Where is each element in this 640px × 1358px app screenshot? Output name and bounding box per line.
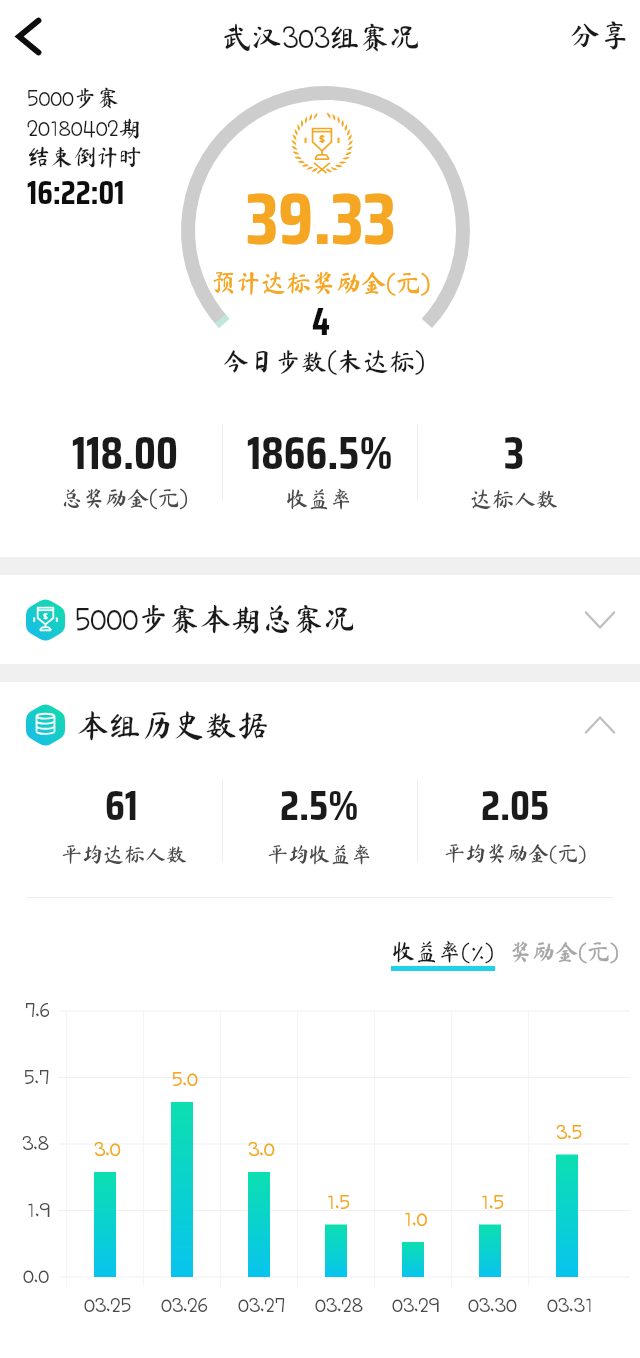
staticText: 20180402期 [27, 116, 142, 141]
staticText: 武汉303组赛况 [222, 22, 420, 55]
staticText: 1.9 [27, 1199, 50, 1222]
staticText: 3.5 [556, 1121, 583, 1144]
staticText: 1.0 [404, 1208, 428, 1231]
staticText: 5.7 [24, 1066, 50, 1089]
staticText: 本组历史数据 [77, 709, 270, 741]
staticText: 118.00 [72, 417, 178, 489]
staticText: 2.5% [280, 772, 359, 838]
staticText: 2.05 [481, 772, 550, 838]
staticText: 5000步赛 [27, 86, 120, 111]
staticText: 3 [504, 417, 525, 489]
staticText: 3.8 [22, 1132, 50, 1155]
staticText: 1.5 [481, 1191, 504, 1214]
button[interactable]: 5000步赛本期总赛况 [0, 575, 640, 664]
staticText: 预计达标奖励金(元) [211, 270, 431, 297]
staticText: 4 [312, 292, 330, 352]
button[interactable]: 分享 [562, 11, 638, 59]
staticText: 结束倒计时 [27, 145, 142, 168]
button[interactable]: 奖励金(元) [509, 940, 619, 977]
staticText: 奖励金(元) [509, 940, 619, 965]
staticText: 5.0 [172, 1068, 198, 1091]
staticText: 03.30 [468, 1294, 517, 1317]
staticText: 61 [105, 772, 138, 838]
staticText: 7.6 [25, 999, 50, 1022]
staticText: 平均奖励金(元) [444, 843, 587, 866]
staticText: 03.31 [547, 1294, 593, 1317]
button[interactable]: Back [0, 4, 56, 68]
staticText: 03.28 [315, 1294, 363, 1317]
staticText: 分享 [570, 20, 630, 50]
staticText: 今日步数(未达标) [223, 348, 426, 377]
staticText: 1.5 [327, 1191, 350, 1214]
staticText: 收益率 [286, 488, 353, 510]
staticText: 03.29 [392, 1294, 440, 1317]
staticText: 3.0 [94, 1138, 121, 1161]
staticText: 平均收益率 [267, 844, 372, 865]
staticText: 5000步赛本期总赛况 [75, 603, 356, 637]
staticText: 3.0 [248, 1138, 275, 1161]
staticText: 03.25 [84, 1294, 132, 1317]
staticText: 总奖励金(元) [61, 487, 188, 511]
staticText: 0.0 [23, 1265, 50, 1288]
staticText: 16:22:01 [27, 167, 125, 219]
staticText: 达标人数 [470, 488, 559, 510]
staticText: 03.27 [238, 1294, 285, 1317]
staticText: 收益率(%) [392, 940, 494, 965]
button[interactable]: 收益率(%) [391, 940, 495, 971]
staticText: 1866.5% [247, 417, 393, 489]
staticText: 03.26 [161, 1294, 208, 1317]
button[interactable]: 本组历史数据 [0, 682, 640, 768]
staticText: 平均达标人数 [61, 844, 187, 865]
staticText: 39.33 [246, 160, 396, 276]
